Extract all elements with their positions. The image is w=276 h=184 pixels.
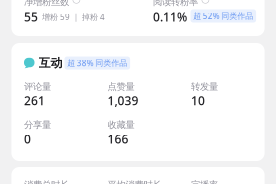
staticText: 阅读转粉率 <box>153 0 198 8</box>
staticText: 同类作品 <box>221 11 253 21</box>
button[interactable]: 评论量 <box>11 81 95 109</box>
staticText: 0.11% <box>153 9 187 25</box>
staticText: 166 <box>107 131 128 147</box>
staticText: 互动 <box>38 56 62 70</box>
staticText: 261 <box>24 93 45 109</box>
staticText: 55 <box>24 9 38 25</box>
button[interactable]: 阅读转粉率 <box>140 0 269 25</box>
staticText: 增粉 59 ｜ 掉粉 4 <box>42 11 105 22</box>
staticText: 超 <box>193 11 201 21</box>
staticText: 0 <box>24 131 31 147</box>
staticText: 完播率 <box>191 179 218 184</box>
staticText: 转发量 <box>191 81 218 92</box>
staticText: 评论量 <box>24 81 51 92</box>
button[interactable]: 分享量 <box>11 119 95 147</box>
staticText: 净增粉丝数 <box>24 0 69 8</box>
button[interactable]: 净增粉丝数 <box>11 0 140 25</box>
staticText: 超 <box>67 58 75 68</box>
button[interactable]: 转发量 <box>178 81 262 109</box>
staticText: 收藏量 <box>107 119 134 130</box>
staticText: 10 <box>191 93 205 109</box>
staticText: 同类作品 <box>95 58 127 68</box>
staticText: 38% <box>77 58 94 68</box>
button[interactable]: 完播率 <box>178 179 262 184</box>
button[interactable]: 收藏量 <box>95 119 178 147</box>
staticText: 点赞量 <box>107 81 134 92</box>
staticText: 1,039 <box>107 93 138 109</box>
staticText: 消费总时长 <box>24 179 69 184</box>
button[interactable]: 平均消费时长 <box>95 179 178 184</box>
button[interactable]: 点赞量 <box>95 81 178 109</box>
button[interactable]: 消费总时长 <box>11 179 95 184</box>
staticText: 平均消费时长 <box>107 179 161 184</box>
staticText: 分享量 <box>24 119 51 130</box>
staticText: 52% <box>203 11 220 21</box>
